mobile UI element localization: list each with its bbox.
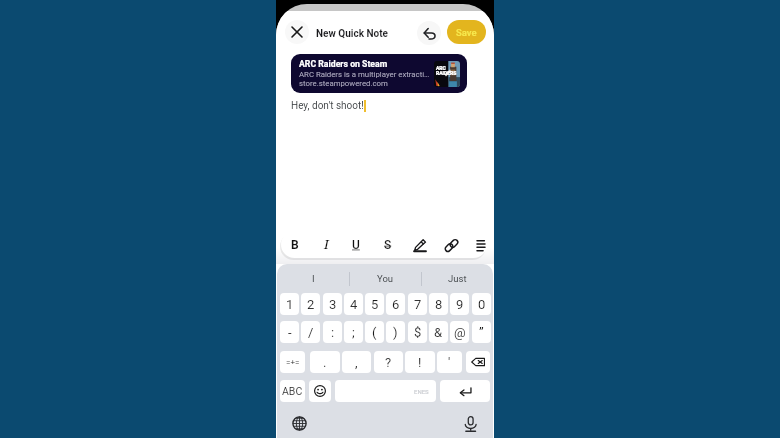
staticText: ARC Raiders on Steam xyxy=(299,59,388,69)
button[interactable]: 9 xyxy=(450,293,469,315)
staticText: ARC Raiders is a multiplayer extracti… xyxy=(299,70,430,79)
staticText: =+= xyxy=(286,358,300,367)
button[interactable]: Change language xyxy=(292,416,307,431)
button[interactable]: - xyxy=(280,321,299,343)
button[interactable]: =+= xyxy=(280,351,305,373)
staticText: New Quick Note xyxy=(316,28,389,40)
staticText: ' xyxy=(448,355,451,370)
staticText: , xyxy=(355,355,358,370)
button[interactable]: Bold xyxy=(282,231,308,258)
staticText: ” xyxy=(479,325,484,340)
button[interactable]: 6 xyxy=(386,293,405,315)
button[interactable]: ? xyxy=(374,351,403,373)
staticText: 4 xyxy=(350,297,358,312)
button[interactable]: Save xyxy=(447,20,486,44)
button[interactable]: I xyxy=(277,264,349,293)
button[interactable]: ( xyxy=(365,321,384,343)
staticText: ) xyxy=(393,325,398,340)
staticText: 2 xyxy=(307,297,315,312)
button[interactable]: Voice input xyxy=(463,416,479,432)
staticText: I xyxy=(312,273,315,284)
staticText: Save xyxy=(456,27,477,38)
staticText: $ xyxy=(414,325,422,340)
button[interactable]: 0 xyxy=(472,293,491,315)
staticText: 6 xyxy=(392,297,400,312)
button[interactable]: 8 xyxy=(429,293,448,315)
staticText: S xyxy=(384,238,392,252)
button[interactable]: 7 xyxy=(408,293,427,315)
staticText: 9 xyxy=(456,297,464,312)
button[interactable]: ” xyxy=(472,321,491,343)
staticText: ! xyxy=(418,355,422,370)
button[interactable]: ! xyxy=(405,351,435,373)
button[interactable]: ARC Raiders on Steam xyxy=(291,54,467,93)
staticText: & xyxy=(434,325,443,340)
button[interactable]: & xyxy=(429,321,448,343)
button[interactable]: Close xyxy=(285,20,309,44)
staticText: U xyxy=(352,238,360,252)
button[interactable]: Underline xyxy=(343,231,369,258)
button[interactable]: 2 xyxy=(301,293,320,315)
button[interactable]: You xyxy=(350,264,421,293)
staticText: 5 xyxy=(371,297,379,312)
staticText: ARC RAIDERS xyxy=(436,65,457,77)
button[interactable]: Highlight xyxy=(407,231,433,258)
staticText: @ xyxy=(454,325,466,340)
button[interactable]: 5 xyxy=(365,293,384,315)
staticText: ? xyxy=(385,355,392,370)
button[interactable]: Emoji xyxy=(309,380,331,402)
button[interactable]: . xyxy=(310,351,340,373)
button[interactable]: ; xyxy=(344,321,363,343)
button[interactable]: 3 xyxy=(323,293,342,315)
button[interactable]: / xyxy=(301,321,320,343)
button[interactable]: Just xyxy=(422,264,493,293)
button[interactable]: List xyxy=(468,231,494,258)
button[interactable]: Enter xyxy=(440,380,490,402)
button[interactable]: Italic xyxy=(313,231,339,258)
staticText: 3 xyxy=(329,297,337,312)
staticText: ABC xyxy=(282,385,303,397)
button[interactable]: Space xyxy=(335,380,436,402)
staticText: ; xyxy=(352,325,355,340)
button[interactable]: Link xyxy=(438,231,464,258)
staticText: Hey, don't shoot! xyxy=(291,100,364,112)
staticText: You xyxy=(377,273,394,284)
staticText: 1 xyxy=(286,297,294,312)
staticText: . xyxy=(323,355,327,370)
staticText: 0 xyxy=(478,297,486,312)
button[interactable]: Backspace xyxy=(466,351,490,373)
button[interactable]: 1 xyxy=(280,293,299,315)
staticText: - xyxy=(288,325,292,340)
staticText: Just xyxy=(448,273,467,284)
staticText: B xyxy=(291,238,299,252)
staticText: 8 xyxy=(435,297,443,312)
staticText: ENES xyxy=(414,388,429,395)
button[interactable]: @ xyxy=(450,321,469,343)
button[interactable]: 4 xyxy=(344,293,363,315)
staticText: / xyxy=(308,325,314,340)
button[interactable]: $ xyxy=(408,321,427,343)
staticText: store.steampowered.com xyxy=(299,79,388,88)
button[interactable]: ABC xyxy=(280,380,305,402)
button[interactable]: ) xyxy=(386,321,405,343)
button[interactable]: Strikethrough xyxy=(375,231,401,258)
button[interactable]: , xyxy=(342,351,371,373)
staticText: I xyxy=(324,236,329,253)
button[interactable]: Undo xyxy=(417,21,441,45)
staticText: : xyxy=(331,325,335,340)
staticText: 7 xyxy=(414,297,422,312)
staticText: ( xyxy=(372,325,377,340)
button[interactable]: ' xyxy=(437,351,462,373)
button[interactable]: : xyxy=(323,321,342,343)
